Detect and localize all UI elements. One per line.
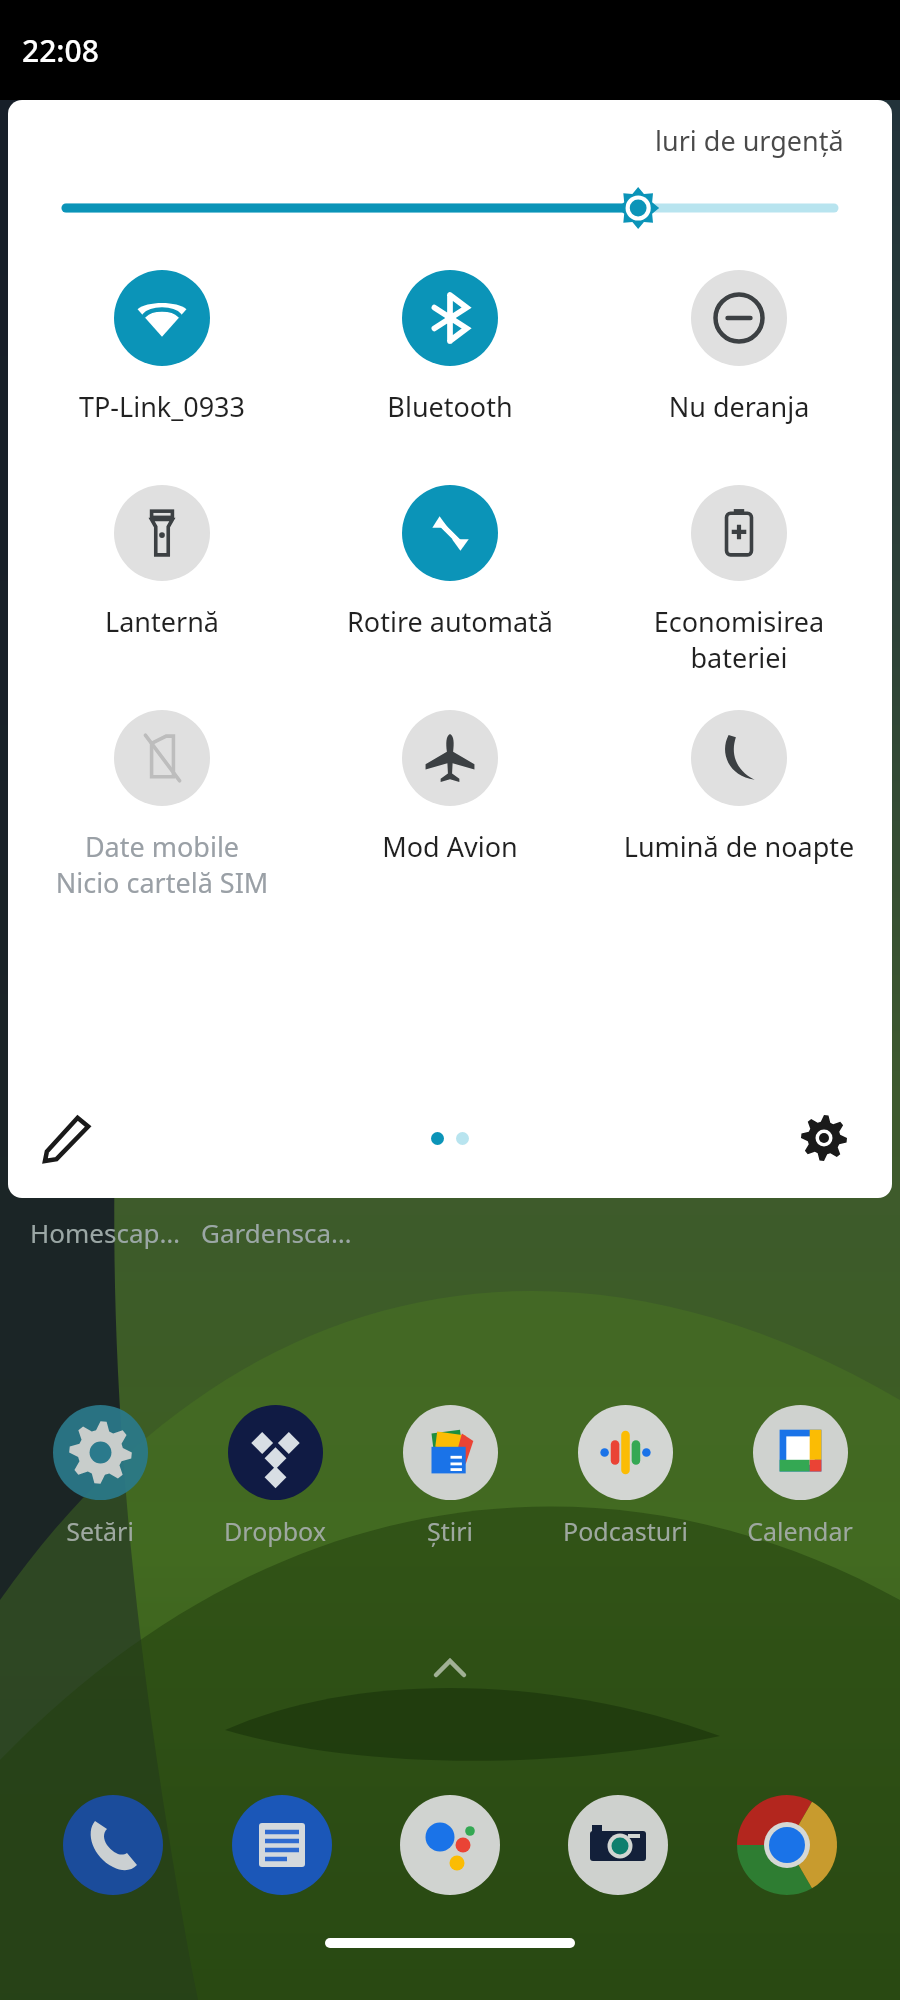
- button[interactable]: Nu deranja: [604, 270, 874, 425]
- button[interactable]: Settings: [784, 1098, 864, 1178]
- staticText: Lumină de noapte: [604, 828, 874, 865]
- button[interactable]: Brightness: [66, 180, 834, 236]
- button[interactable]: Mod Avion: [315, 710, 585, 865]
- staticText: TP-Link_0933: [27, 388, 297, 425]
- staticText: Dropbox: [224, 1514, 326, 1548]
- button[interactable]: Setări: [25, 1405, 175, 1548]
- button[interactable]: Camera: [563, 1790, 673, 1900]
- staticText: Calendar: [747, 1514, 853, 1548]
- staticText: Știri: [427, 1514, 473, 1548]
- staticText: Date mobile Nicio cartelă SIM: [27, 828, 297, 901]
- button[interactable]: Calendar: [725, 1405, 875, 1548]
- button[interactable]: Phone: [58, 1790, 168, 1900]
- button[interactable]: Messages: [227, 1790, 337, 1900]
- button[interactable]: Assistant: [395, 1790, 505, 1900]
- staticText: Podcasturi: [563, 1514, 688, 1548]
- button[interactable]: Dropbox: [200, 1405, 350, 1548]
- button[interactable]: Rotire automată: [315, 485, 585, 640]
- staticText: Rotire automată: [315, 603, 585, 640]
- button[interactable]: Edit tiles: [28, 1098, 108, 1178]
- staticText: Economisirea bateriei: [604, 603, 874, 676]
- button[interactable]: Economisirea bateriei: [604, 485, 874, 676]
- button[interactable]: Lumină de noapte: [604, 710, 874, 865]
- staticText: Lanternă: [27, 603, 297, 640]
- button[interactable]: Podcasturi: [550, 1405, 700, 1548]
- staticText: luri de urgență: [655, 122, 844, 159]
- button[interactable]: Știri: [375, 1405, 525, 1548]
- button[interactable]: Chrome: [732, 1790, 842, 1900]
- button[interactable]: Bluetooth: [315, 270, 585, 425]
- button[interactable]: TP-Link_0933: [27, 270, 297, 425]
- staticText: Bluetooth: [315, 388, 585, 425]
- staticText: Gardensca…: [201, 1215, 352, 1250]
- staticText: Setări: [66, 1514, 134, 1548]
- button[interactable]: Open app drawer: [430, 1648, 470, 1688]
- button[interactable]: Date mobile Nicio cartelă SIM: [27, 710, 297, 901]
- staticText: Homescap…: [30, 1215, 181, 1250]
- button[interactable]: Lanternă: [27, 485, 297, 640]
- staticText: 22:08: [22, 30, 99, 71]
- staticText: Nu deranja: [604, 388, 874, 425]
- staticText: Mod Avion: [315, 828, 585, 865]
